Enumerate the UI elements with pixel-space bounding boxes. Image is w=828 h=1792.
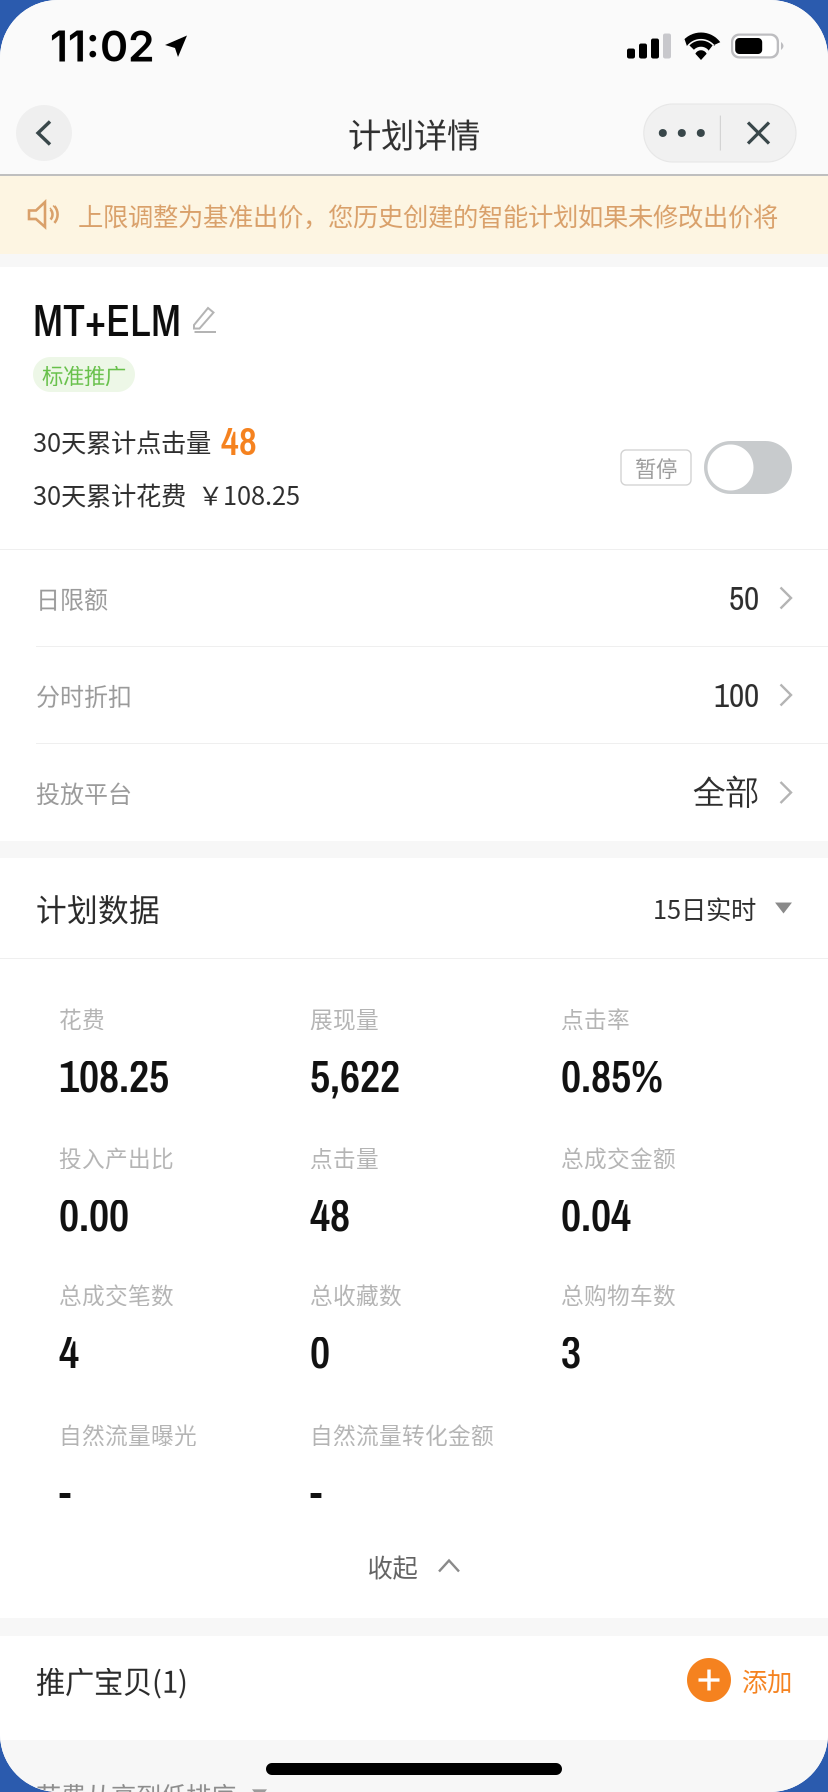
staticText: 总收藏数	[310, 1278, 402, 1310]
staticText: 3	[561, 1322, 581, 1382]
staticText: 0.00	[59, 1185, 129, 1245]
staticText: 点击率	[561, 1002, 630, 1034]
staticText: 5,622	[310, 1046, 400, 1106]
staticText: 48	[310, 1185, 350, 1245]
staticText: 48	[221, 415, 257, 467]
staticText: 展现量	[310, 1002, 379, 1034]
staticText: 投入产出比	[59, 1141, 174, 1173]
staticText: 标准推广	[42, 359, 126, 390]
staticText: 花费从高到低排序	[36, 1776, 236, 1792]
button[interactable]: Collapse data	[0, 1514, 828, 1601]
staticText: 计划详情	[348, 109, 480, 157]
button[interactable]: 投放平台	[0, 744, 828, 841]
staticText: 暂停	[635, 452, 677, 483]
staticText: 11:02	[50, 20, 155, 72]
staticText: 投放平台	[36, 775, 132, 810]
staticText: 日限额	[36, 581, 108, 615]
staticText: 30天累计花费 ￥108.25	[33, 476, 300, 512]
staticText: 总成交笔数	[59, 1278, 174, 1310]
staticText: 添加	[742, 1662, 792, 1698]
staticText: -	[59, 1462, 71, 1522]
staticText: 4	[59, 1322, 79, 1382]
staticText: 计划数据	[36, 886, 160, 930]
staticText: 0.04	[561, 1185, 631, 1245]
staticText: 108.25	[59, 1046, 169, 1106]
staticText: 总成交金额	[561, 1141, 676, 1173]
button[interactable]: 分时折扣	[0, 647, 828, 744]
button[interactable]: More options and close	[644, 104, 796, 162]
staticText: 自然流量曝光	[59, 1418, 197, 1450]
staticText: 全部	[693, 771, 759, 813]
staticText: 点击量	[310, 1141, 379, 1173]
staticText: MT+ELM	[33, 290, 181, 350]
staticText: 0.85%	[561, 1046, 663, 1106]
staticText: 30天累计点击量	[33, 423, 211, 459]
button[interactable]: Back	[8, 97, 80, 169]
staticText: 0	[310, 1322, 330, 1382]
staticText: 自然流量转化金额	[310, 1418, 494, 1450]
staticText: 花费	[59, 1002, 105, 1034]
staticText: 15日实时	[653, 890, 756, 926]
staticText: 总购物车数	[561, 1278, 676, 1310]
staticText: 收起	[367, 1548, 417, 1584]
staticText: 推广宝贝(1)	[36, 1659, 188, 1701]
button[interactable]: 日限额	[0, 550, 828, 647]
button[interactable]: Campaign paused toggle	[621, 441, 792, 494]
staticText: -	[310, 1462, 322, 1522]
staticText: 100	[714, 673, 759, 717]
button[interactable]: Add promoted item	[687, 1636, 792, 1724]
staticText: 50	[729, 576, 759, 620]
button[interactable]: Date range 15 day realtime	[653, 858, 792, 958]
staticText: 上限调整为基准出价，您历史创建的智能计划如果未修改出价将	[78, 197, 778, 233]
staticText: 分时折扣	[36, 678, 132, 712]
